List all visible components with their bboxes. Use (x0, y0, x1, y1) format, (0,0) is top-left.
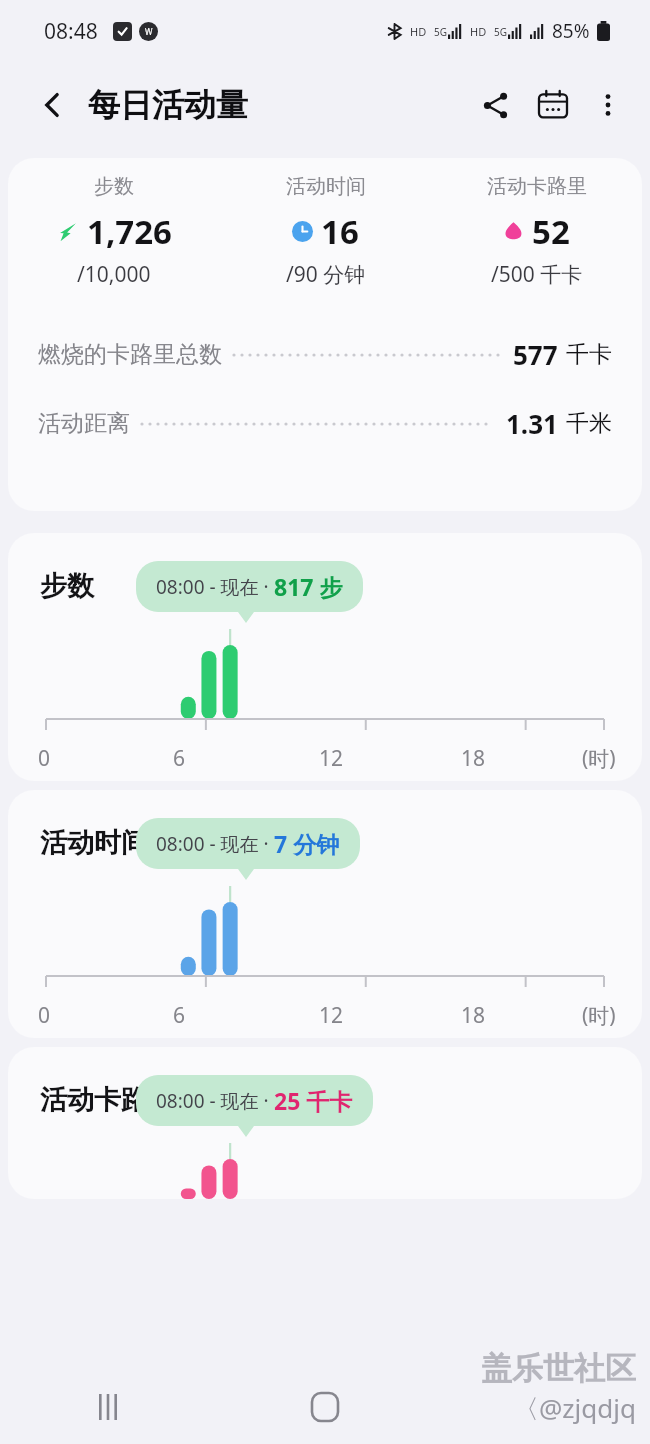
staticText: 1,726 (87, 209, 172, 254)
staticText: 6 (173, 744, 186, 773)
button[interactable]: More options (582, 79, 634, 131)
staticText: 85% (552, 18, 590, 44)
staticText: HD (410, 24, 427, 39)
staticText: 0 (38, 744, 51, 773)
staticText: 12 (319, 744, 344, 773)
staticText: 6 (173, 1001, 186, 1030)
staticText: HD (470, 24, 487, 39)
staticText: 0 (38, 1001, 51, 1030)
staticText: 活动卡路里 (40, 1083, 175, 1117)
staticText: 18 (461, 1001, 486, 1030)
staticText: 577 (513, 337, 558, 372)
button[interactable]: 活动距离 (38, 406, 612, 441)
staticText: /10,000 (77, 260, 151, 289)
staticText: 52 (532, 209, 570, 254)
staticText: 步数 (94, 174, 134, 199)
staticText: 08:00 - 现在 · (156, 574, 274, 600)
button[interactable]: Back (26, 78, 80, 132)
button[interactable]: 步数 (8, 158, 642, 511)
staticText: (时) (582, 744, 616, 773)
staticText: 千米 (566, 409, 612, 438)
staticText: 千卡 (566, 340, 612, 369)
staticText: 7 分钟 (274, 828, 340, 859)
staticText: 08:00 - 现在 · (156, 1088, 274, 1114)
staticText: /90 分钟 (286, 260, 366, 289)
staticText: 活动时间 (286, 174, 366, 199)
staticText: (时) (582, 1001, 616, 1030)
button[interactable]: 燃烧的卡路里总数 (38, 337, 612, 372)
button[interactable]: 活动时间 (8, 790, 642, 1038)
staticText: 08:00 - 现在 · (156, 831, 274, 857)
button[interactable]: 步数 (8, 533, 642, 781)
button[interactable]: Home (216, 1370, 433, 1444)
staticText: 活动时间 (40, 826, 148, 860)
staticText: 〈@zjqdjq (513, 1390, 636, 1426)
staticText: 盖乐世社区 (481, 1349, 636, 1388)
staticText: 5G (434, 25, 447, 39)
button[interactable]: 活动卡路里 (8, 1047, 642, 1199)
button[interactable]: Recents (0, 1370, 216, 1444)
staticText: 5G (494, 25, 507, 39)
button[interactable]: Calendar (524, 76, 582, 134)
staticText: 燃烧的卡路里总数 (38, 340, 222, 369)
staticText: 步数 (40, 569, 94, 603)
staticText: 817 步 (274, 571, 343, 602)
staticText: 1.31 (506, 406, 558, 441)
staticText: 25 千卡 (274, 1085, 353, 1116)
staticText: W (145, 26, 153, 37)
staticText: 活动距离 (38, 409, 130, 438)
staticText: 活动卡路里 (487, 174, 587, 199)
staticText: 16 (321, 209, 359, 254)
staticText: /500 千卡 (491, 260, 583, 289)
staticText: 08:48 (44, 17, 98, 46)
staticText: 每日活动量 (88, 85, 248, 125)
button[interactable]: Share (466, 76, 524, 134)
staticText: 18 (461, 744, 486, 773)
staticText: 12 (319, 1001, 344, 1030)
